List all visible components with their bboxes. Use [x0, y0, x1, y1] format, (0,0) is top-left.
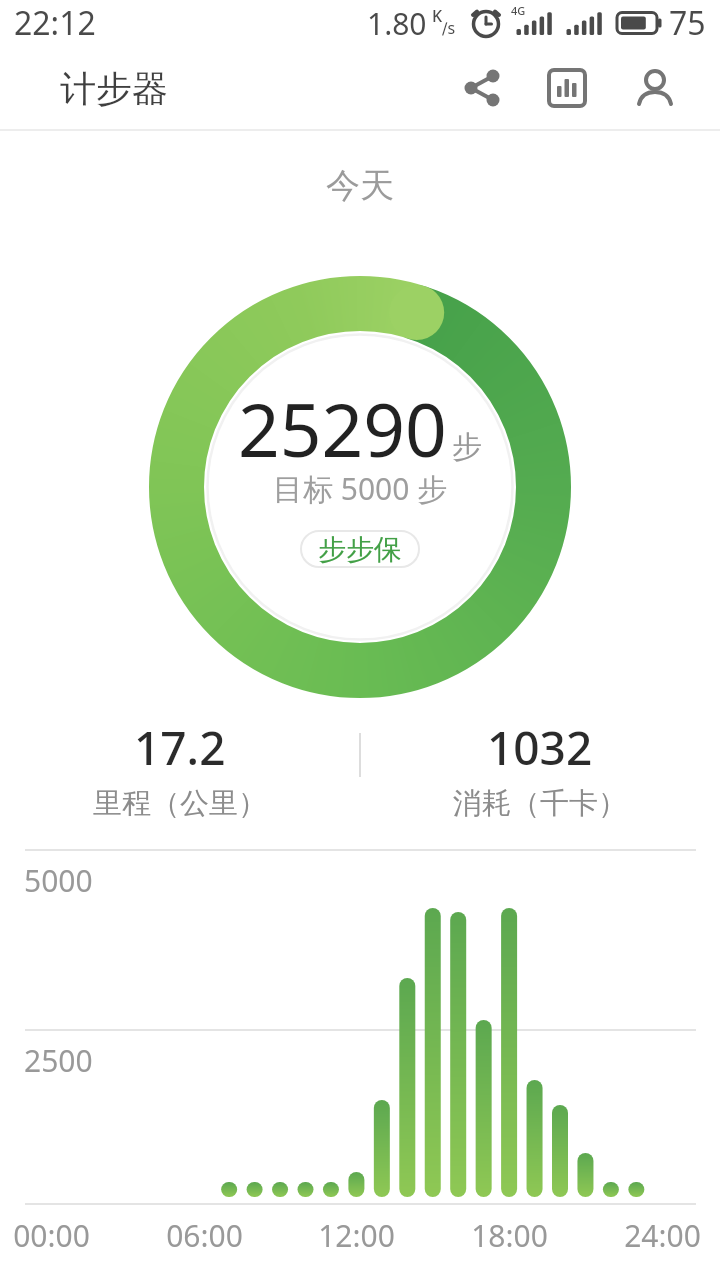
staticText: 2500 — [24, 1040, 93, 1081]
staticText: 00:00 — [13, 1215, 90, 1256]
staticText: 25290 — [238, 379, 447, 478]
staticText: 1.80 — [367, 3, 427, 44]
staticText: 17.2 — [134, 716, 226, 779]
staticText: 步步保 — [318, 532, 402, 567]
staticText: 步 — [452, 428, 482, 466]
staticText: 22:12 — [14, 1, 96, 45]
staticText: K — [432, 5, 443, 27]
button[interactable]: 步步保 — [300, 530, 420, 568]
button[interactable] — [539, 60, 595, 116]
staticText: 目标 5000 步 — [273, 468, 448, 509]
staticText: 24:00 — [624, 1215, 701, 1256]
staticText: 1032 — [487, 716, 593, 779]
staticText: 06:00 — [166, 1215, 243, 1256]
button[interactable] — [627, 60, 683, 116]
staticText: 5000 — [24, 860, 93, 901]
staticText: 今天 — [326, 164, 394, 207]
button[interactable] — [454, 60, 510, 116]
staticText: 里程（公里） — [93, 785, 267, 822]
staticText: 75 — [669, 1, 706, 45]
staticText: 18:00 — [471, 1215, 548, 1256]
staticText: 4G — [511, 3, 526, 18]
staticText: ∕s — [442, 17, 456, 39]
staticText: 消耗（千卡） — [453, 785, 627, 822]
staticText: 计步器 — [60, 66, 168, 111]
staticText: 12:00 — [318, 1215, 395, 1256]
